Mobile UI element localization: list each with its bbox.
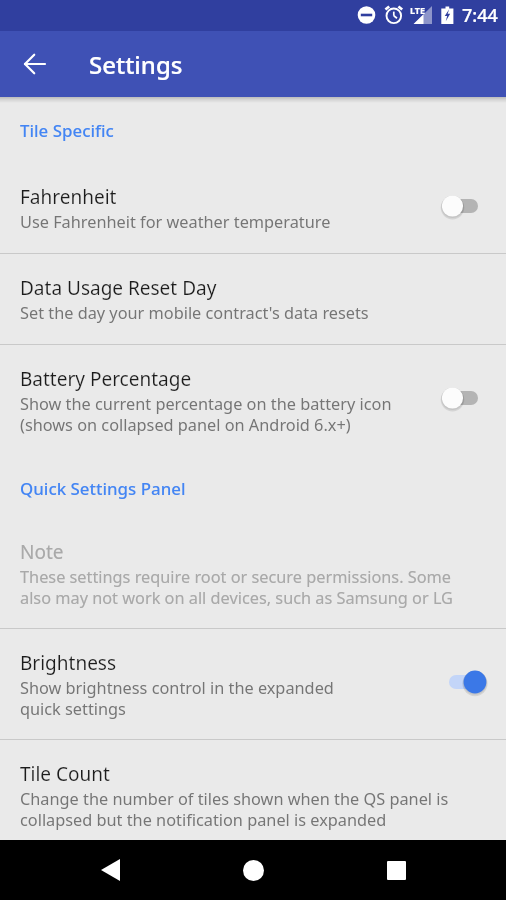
staticText: Show brightness control in the expanded … [20,677,334,719]
staticText: Change the number of tiles shown when th… [20,788,449,830]
button[interactable]: Toggle [440,383,490,413]
button[interactable]: Tile Count [0,740,506,850]
staticText: Note [20,539,64,565]
button[interactable]: Brightness [0,629,506,739]
staticText: These settings require root or secure pe… [20,566,453,608]
staticText: Settings [89,48,183,81]
staticText: Quick Settings Panel [20,477,186,500]
button[interactable]: Back [82,842,138,898]
staticText: Tile Count [20,761,110,787]
staticText: Brightness [20,650,117,676]
staticText: Set the day your mobile contract's data … [20,302,369,324]
staticText: Fahrenheit [20,184,117,210]
staticText: Show the current percentage on the batte… [20,393,392,435]
staticText: 7:44 [462,3,498,28]
staticText: Use Fahrenheit for weather temperature [20,211,331,233]
button[interactable]: Toggle [440,191,490,221]
staticText: Tile Specific [20,119,114,142]
button[interactable]: Recents [368,842,424,898]
button[interactable]: Battery Percentage [0,345,506,435]
staticText: Data Usage Reset Day [20,275,217,301]
button[interactable]: Fahrenheit [0,184,506,253]
button[interactable]: Back [11,40,59,88]
button[interactable]: Note [0,539,506,628]
button[interactable]: Data Usage Reset Day [0,254,506,344]
staticText: Battery Percentage [20,366,192,392]
button[interactable]: Toggle [440,667,490,697]
staticText: LTE [410,4,426,16]
button[interactable]: Home [225,842,281,898]
